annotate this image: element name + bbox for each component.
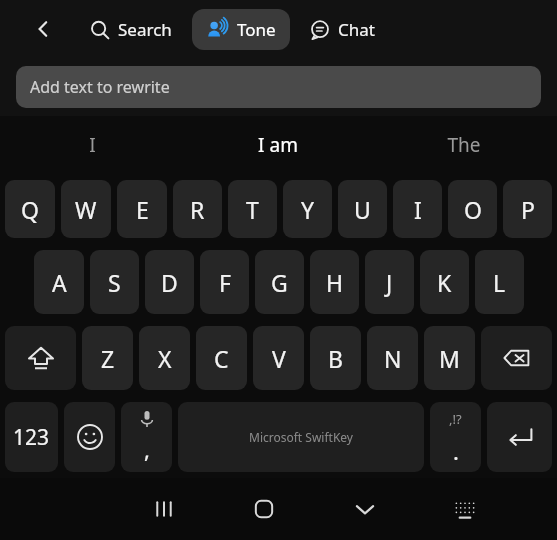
button[interactable]: Shift [5,326,76,390]
staticText: A [52,267,67,298]
staticText: M [439,343,460,374]
staticText: W [75,194,97,225]
staticText: D [161,267,178,298]
staticText: Z [101,343,115,374]
staticText: C [214,343,229,374]
button[interactable]: Home [241,486,287,532]
staticText: I am [258,132,298,158]
button[interactable]: Microsoft SwiftKey [178,402,424,472]
staticText: K [437,267,452,298]
button[interactable]: Q [5,180,55,238]
button[interactable]: Emoji [64,402,115,472]
button[interactable]: R [173,180,222,238]
staticText: , [144,434,150,464]
staticText: L [493,267,506,298]
staticText: N [384,343,402,374]
staticText: 123 [13,423,50,452]
button[interactable]: J [365,250,414,314]
staticText: R [190,194,205,225]
staticText: . [453,436,459,466]
staticText: Tone [237,18,276,41]
button[interactable]: Chat [304,10,381,49]
button[interactable]: Add text to rewrite [16,66,541,108]
staticText: F [219,267,231,298]
button[interactable]: I [0,116,185,174]
staticText: V [272,343,286,374]
staticText: Add text to rewrite [30,76,170,98]
staticText: O [464,194,482,225]
button[interactable]: D [145,250,194,314]
button[interactable]: Y [283,180,332,238]
button[interactable]: Z [82,326,133,390]
button[interactable]: T [228,180,277,238]
button[interactable]: C [196,326,247,390]
button[interactable]: Backspace [481,326,552,390]
button[interactable]: The [371,116,557,174]
button[interactable]: S [90,250,139,314]
button[interactable]: U [338,180,387,238]
staticText: I [414,194,422,225]
staticText: S [108,267,121,298]
staticText: Microsoft SwiftKey [249,429,353,445]
staticText: Y [301,194,315,225]
button[interactable]: B [310,326,361,390]
staticText: Chat [338,18,375,41]
staticText: Q [21,194,39,225]
staticText: T [246,194,259,225]
button[interactable]: H [310,250,359,314]
button[interactable]: Voice input and comma [121,402,172,472]
button[interactable]: Back [26,12,60,46]
button[interactable]: X [139,326,190,390]
staticText: P [521,194,535,225]
button[interactable]: F [200,250,249,314]
staticText: ,!? [449,410,462,428]
button[interactable]: I [393,180,442,238]
staticText: J [386,267,393,298]
staticText: The [447,132,481,158]
button[interactable]: G [255,250,304,314]
button[interactable]: Hide keyboard [342,486,388,532]
button[interactable]: M [424,326,475,390]
staticText: U [354,194,371,225]
staticText: Search [118,18,172,41]
button[interactable]: K [420,250,469,314]
button[interactable]: L [475,250,524,314]
staticText: X [158,343,172,374]
button[interactable]: E [117,180,167,238]
button[interactable]: Change keyboard [442,486,488,532]
staticText: B [328,343,343,374]
button[interactable]: V [253,326,304,390]
button[interactable]: P [503,180,552,238]
button[interactable]: Recents [141,486,187,532]
button[interactable]: W [61,180,111,238]
button[interactable]: Enter [487,402,552,472]
button[interactable]: A [34,250,84,314]
button[interactable]: Search [84,10,178,49]
staticText: I [89,132,96,158]
button[interactable]: I am [185,116,371,174]
staticText: H [326,267,344,298]
button[interactable]: Tone [192,9,290,50]
button[interactable]: N [367,326,418,390]
button[interactable]: O [448,180,497,238]
staticText: E [136,194,149,225]
button[interactable]: Punctuation [430,402,481,472]
button[interactable]: 123 [5,402,58,472]
staticText: G [271,267,288,298]
